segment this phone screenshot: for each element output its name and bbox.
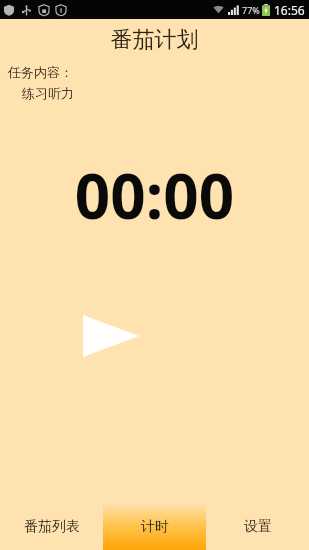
staticText: 任务内容：	[8, 64, 73, 80]
button[interactable]: 番茄列表	[0, 504, 103, 550]
staticText: 计时	[141, 518, 169, 536]
button[interactable]: 设置	[206, 504, 309, 550]
staticText: 00:00	[0, 153, 309, 237]
button[interactable]: 计时	[103, 504, 206, 550]
button[interactable]: Start timer	[83, 315, 139, 357]
staticText: 16:56	[274, 2, 305, 18]
staticText: 练习听力	[22, 85, 74, 101]
staticText: 设置	[244, 518, 272, 536]
staticText: 77%	[242, 4, 260, 16]
staticText: 番茄计划	[0, 26, 309, 54]
staticText: 番茄列表	[24, 518, 80, 536]
